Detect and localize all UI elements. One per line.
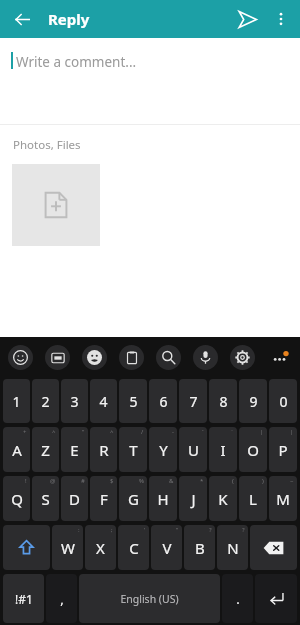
staticText: ^ [52,428,56,436]
button[interactable]: ^ [32,427,59,472]
staticText: . [236,590,240,608]
button[interactable]: Settings [224,337,261,377]
button[interactable]: English (US) [79,574,220,623]
button[interactable]: @ [32,476,59,521]
button[interactable]: ? [184,525,215,570]
button[interactable]: Stickers [76,337,113,377]
button[interactable]: $ [90,476,117,521]
button[interactable]: 0 [269,379,297,423]
staticText: | [260,428,264,436]
button[interactable]: ? [217,525,248,570]
button[interactable]: Write a comment... [0,38,300,124]
button[interactable]: ¨ [209,427,237,472]
button[interactable]: Voice input [187,337,224,377]
staticText: - [172,428,174,436]
button[interactable]: * [179,476,207,521]
staticText: ` [202,428,204,436]
button[interactable]: Add attachment [12,164,100,246]
button[interactable]: Send [230,2,264,36]
button[interactable]: More [261,337,298,377]
button[interactable]: , [46,574,77,623]
button[interactable]: 3 [61,379,88,423]
button[interactable]: Search [150,337,187,377]
staticText: * [200,477,204,485]
staticText: X [96,538,105,558]
button[interactable]: ; [85,525,116,570]
staticText: " [176,526,179,534]
button[interactable]: / [119,427,147,472]
button[interactable]: 5 [119,379,147,423]
staticText: B [195,538,205,558]
staticText: ( [232,477,234,485]
staticText: ~ [290,477,294,485]
button[interactable]: " [151,525,182,570]
staticText: ¨ [230,428,234,436]
staticText: U [188,440,199,460]
button[interactable]: ' [118,525,149,570]
button[interactable]: ~ [269,476,297,521]
button[interactable]: & [149,476,177,521]
button[interactable]: | [239,427,267,472]
staticText: / [141,428,144,436]
button[interactable]: # [61,476,88,521]
button[interactable]: ! [3,476,30,521]
button[interactable]: Enter [255,574,297,623]
staticText: " [82,428,85,436]
button[interactable]: ^ [90,427,117,472]
button[interactable]: ( [209,476,237,521]
staticText: English (US) [120,592,179,606]
staticText: 7 [189,392,198,411]
staticText: T [129,440,138,460]
button[interactable]: 6 [149,379,177,423]
button[interactable]: 1 [3,379,30,423]
staticText: @ [50,477,56,485]
staticText: L [249,489,257,509]
staticText: 6 [159,392,168,411]
button[interactable]: More options [266,4,296,34]
staticText: E [70,440,79,460]
staticText: 5 [129,392,138,411]
button[interactable]: | [269,427,297,472]
button[interactable]: - [149,427,177,472]
button[interactable]: Emoji [2,337,39,377]
staticText: | [290,428,294,436]
button[interactable]: !#1 [3,574,44,623]
staticText: K [218,489,228,509]
staticText: & [169,477,174,485]
button[interactable]: Backspace [250,525,297,570]
staticText: C [129,538,139,558]
staticText: 8 [219,392,228,411]
staticText: % [139,477,144,485]
staticText: M [276,489,290,509]
button[interactable]: Back [6,3,38,35]
button[interactable]: " [61,427,88,472]
staticText: ? [209,526,212,534]
staticText: W [61,538,75,558]
button[interactable]: 7 [179,379,207,423]
button[interactable]: . [222,574,253,623]
staticText: 4 [99,392,108,411]
button[interactable]: Shift [3,525,50,570]
staticText: !#1 [15,591,33,607]
staticText: H [157,489,169,509]
button[interactable]: 4 [90,379,117,423]
staticText: Photos, Files [13,137,81,153]
button[interactable]: : [52,525,83,570]
button[interactable]: 9 [239,379,267,423]
button[interactable]: GIF [39,337,76,377]
staticText: # [81,477,85,485]
button[interactable]: ` [179,427,207,472]
staticText: A [12,440,22,460]
button[interactable]: ) [239,476,267,521]
staticText: D [69,489,80,509]
button[interactable]: Clipboard [113,337,150,377]
staticText: I [220,440,226,460]
staticText: 0 [279,392,288,411]
button[interactable]: % [119,476,147,521]
button[interactable]: + [3,427,30,472]
staticText: ^ [110,428,114,436]
staticText: P [278,440,288,460]
staticText: Write a comment... [16,53,137,71]
button[interactable]: 2 [32,379,59,423]
button[interactable]: 8 [209,379,237,423]
